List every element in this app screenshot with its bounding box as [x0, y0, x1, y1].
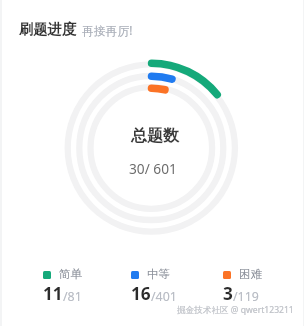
button[interactable]: 简单: [43, 265, 115, 303]
staticText: 掘金技术社区 @ qwert123211: [177, 304, 294, 316]
button[interactable]: 中等: [131, 265, 203, 303]
staticText: /81: [63, 288, 82, 305]
staticText: 中等: [147, 267, 171, 282]
staticText: 3: [223, 282, 233, 305]
staticText: 30/ 601: [129, 159, 177, 178]
staticText: 困难: [239, 267, 263, 282]
button[interactable]: 困难: [223, 265, 295, 303]
staticText: 再接再厉!: [82, 22, 133, 38]
staticText: 16: [131, 282, 151, 305]
staticText: 11: [43, 282, 63, 305]
staticText: 简单: [59, 267, 83, 282]
staticText: /119: [233, 288, 259, 305]
staticText: /401: [151, 288, 177, 305]
staticText: 刷题进度: [19, 20, 77, 38]
staticText: 总题数: [131, 126, 179, 146]
